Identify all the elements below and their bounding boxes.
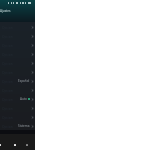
staticText: Sistema: [18, 124, 30, 128]
staticText: Ajustes: [0, 9, 11, 13]
button[interactable]: Option: [0, 22, 35, 31]
staticText: Español: [18, 79, 30, 83]
button[interactable]: Option: [0, 103, 35, 112]
button[interactable]: Option: [0, 40, 35, 49]
button[interactable]: Home: [14, 144, 16, 146]
button[interactable]: Back: [0, 144, 1, 146]
staticText: Auto: [20, 97, 27, 101]
button[interactable]: Option: [0, 67, 35, 76]
button[interactable]: Option: [0, 112, 35, 121]
button[interactable]: Option: [0, 85, 35, 94]
button[interactable]: Recents: [26, 144, 28, 146]
button[interactable]: Option: [0, 76, 35, 85]
button[interactable]: Option: [0, 49, 35, 58]
button[interactable]: Option: [0, 94, 35, 103]
button[interactable]: Option: [0, 58, 35, 67]
button[interactable]: Option: [0, 121, 35, 130]
button[interactable]: Option: [0, 31, 35, 40]
